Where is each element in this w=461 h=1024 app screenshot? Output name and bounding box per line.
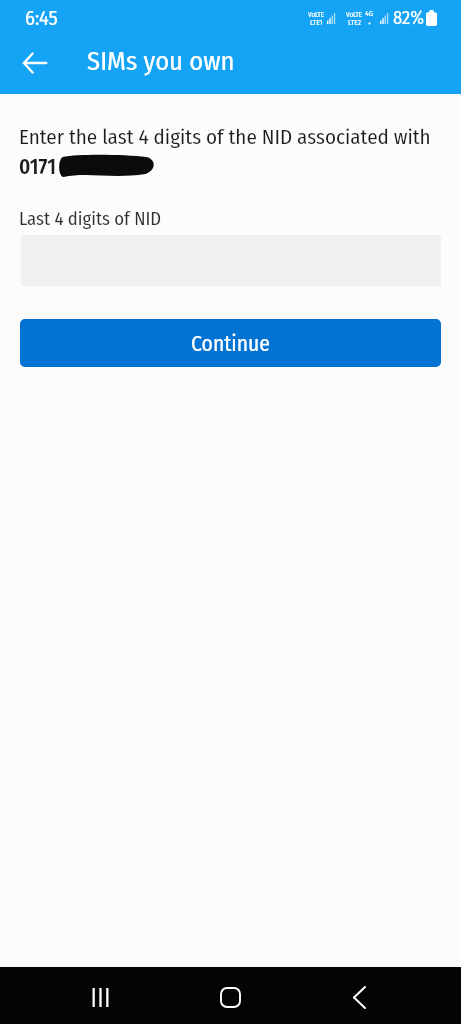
staticText: VoLTE <box>346 10 363 18</box>
staticText: Continue <box>191 331 270 357</box>
staticText: LTE2 <box>348 18 362 27</box>
staticText: 82% <box>393 7 425 29</box>
staticText: VoLTE <box>308 10 325 18</box>
button[interactable]: Navigate up <box>11 39 59 87</box>
staticText: Enter the last 4 digits of the NID assoc… <box>19 124 431 149</box>
staticText: 6:45 <box>25 6 58 30</box>
staticText: Last 4 digits of NID <box>19 208 162 230</box>
button[interactable]: Back <box>321 969 397 1024</box>
staticText: 0171 <box>19 154 56 179</box>
staticText: SIMs you own <box>87 45 235 77</box>
staticText: + <box>368 19 372 27</box>
button[interactable]: Home <box>192 969 268 1024</box>
staticText: 4G <box>365 9 374 19</box>
staticText: LTE1 <box>310 18 323 27</box>
button[interactable]: Continue <box>20 319 441 367</box>
button[interactable]: Recent apps <box>62 969 138 1024</box>
